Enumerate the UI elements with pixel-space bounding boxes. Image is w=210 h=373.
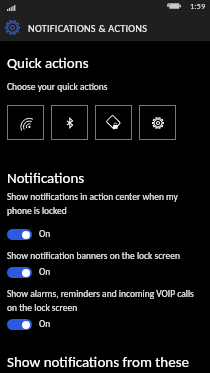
button[interactable]: On	[7, 228, 51, 240]
other: Battery	[167, 3, 181, 9]
button[interactable]: On	[7, 318, 51, 330]
staticText: Show notification banners on the lock sc…	[7, 250, 180, 262]
other: Cellular signal	[7, 5, 16, 11]
staticText: NOTIFICATIONS & ACTIONS	[28, 22, 148, 35]
button[interactable]: Wi-Fi	[7, 105, 44, 140]
staticText: Notifications	[7, 169, 85, 187]
button[interactable]: All settings	[139, 105, 176, 140]
staticText: Show notifications in action center when…	[7, 191, 178, 216]
button[interactable]: Bluetooth	[51, 105, 88, 140]
staticText: 1:59	[190, 1, 206, 11]
staticText: Choose your quick actions	[7, 81, 108, 93]
staticText: On	[39, 318, 51, 330]
staticText: Quick actions	[7, 54, 89, 72]
button[interactable]: Settings	[5, 20, 20, 35]
staticText: On	[39, 266, 51, 278]
button[interactable]: On	[7, 266, 51, 278]
staticText: On	[39, 228, 51, 240]
staticText: Show alarms, reminders and incoming VOIP…	[7, 288, 194, 313]
staticText: Show notifications from these	[7, 353, 190, 371]
button[interactable]: Rotation lock	[95, 105, 132, 140]
